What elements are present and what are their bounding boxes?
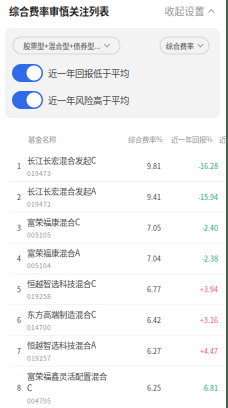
staticText: 东方高端制造混合C — [27, 308, 96, 320]
staticText: 005105 — [27, 230, 51, 239]
staticText: 9.81 — [147, 161, 161, 171]
staticText: 019473 — [27, 168, 51, 178]
button[interactable]: 5 — [0, 274, 226, 304]
staticText: -15.94 — [198, 192, 218, 202]
staticText: 近 — [219, 134, 226, 144]
staticText: 019258 — [27, 291, 51, 301]
staticText: 004795 — [27, 396, 51, 405]
button[interactable]: 7 — [0, 336, 226, 366]
staticText: 近一年风险高于平均 — [48, 93, 129, 107]
staticText: 长江长宏混合发起C — [27, 154, 96, 166]
staticText: +3.16 — [200, 315, 218, 325]
staticText: -16.28 — [198, 161, 218, 171]
staticText: -2.38 — [202, 253, 218, 263]
staticText: 长江长宏混合发起A — [27, 185, 96, 197]
staticText: 8 — [17, 382, 21, 393]
button[interactable]: 6 — [0, 305, 226, 335]
staticText: 1 — [17, 161, 21, 171]
staticText: 005104 — [27, 261, 51, 270]
staticText: 019472 — [27, 199, 51, 209]
staticText: 6 — [17, 315, 21, 325]
staticText: 4 — [17, 253, 21, 263]
button[interactable]: 近一年风险高于平均 — [12, 91, 220, 109]
staticText: 基金名称 — [28, 134, 56, 144]
staticText: 近一年回报% — [171, 134, 213, 144]
staticText: -2.40 — [202, 222, 218, 233]
staticText: 富荣福鑫灵活配置混合C — [27, 370, 107, 394]
staticText: +4.47 — [200, 346, 218, 356]
button[interactable]: 收起设置 — [164, 4, 214, 18]
button[interactable]: 综合费率 — [160, 37, 209, 54]
staticText: -6.81 — [202, 382, 218, 393]
staticText: 综合费率% — [128, 134, 163, 144]
staticText: 7 — [17, 346, 21, 356]
staticText: 综合费率审慎关注列表 — [9, 4, 109, 18]
staticText: 5 — [17, 284, 21, 294]
staticText: 9.41 — [147, 192, 161, 202]
staticText: 综合费率 — [166, 40, 194, 51]
staticText: 014700 — [27, 322, 51, 332]
staticText: 富荣福康混合C — [27, 216, 80, 228]
staticText: 2 — [17, 192, 21, 202]
staticText: 近一年回报低于平均 — [48, 66, 129, 80]
staticText: 3 — [17, 222, 21, 233]
staticText: 7.05 — [147, 222, 161, 233]
staticText: 富荣福康混合A — [27, 247, 80, 259]
button[interactable]: 8 — [0, 367, 226, 408]
button[interactable]: 2 — [0, 182, 226, 212]
staticText: 7.04 — [147, 253, 161, 263]
staticText: 恒越智选科技混合C — [27, 277, 96, 289]
button[interactable]: 4 — [0, 243, 226, 273]
staticText: 6.27 — [147, 346, 161, 356]
staticText: 恒越智选科技混合A — [27, 339, 96, 351]
button[interactable]: 股票型+混合型+债券型... — [13, 37, 120, 54]
staticText: 019257 — [27, 353, 51, 363]
staticText: 收起设置 — [164, 4, 204, 18]
staticText: 6.42 — [147, 315, 161, 325]
staticText: 股票型+混合型+债券型... — [23, 40, 100, 51]
button[interactable]: 1 — [0, 151, 226, 181]
button[interactable]: 3 — [0, 213, 226, 243]
staticText: 6.77 — [147, 284, 161, 294]
staticText: +3.94 — [200, 284, 218, 294]
button[interactable]: 近一年回报低于平均 — [12, 64, 220, 82]
staticText: 6.25 — [147, 382, 161, 393]
